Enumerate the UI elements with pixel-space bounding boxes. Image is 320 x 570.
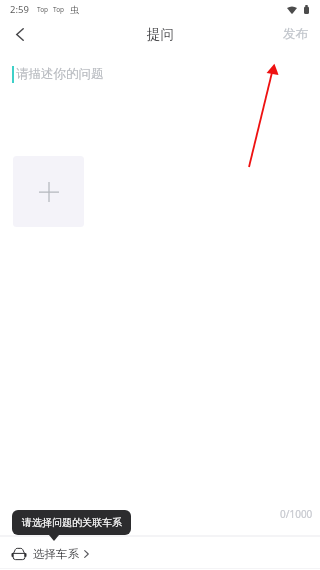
staticText: 请描述你的问题 [16,66,104,82]
staticText: 0/1000 [280,507,313,521]
staticText: 虫 [70,4,79,15]
button[interactable]: Add photo [13,156,84,227]
button[interactable]: 请描述你的问题 [12,64,104,84]
staticText: 2:59 [10,3,29,16]
staticText: Top [37,5,49,14]
staticText: 提问 [147,26,174,43]
staticText: 发布 [283,26,308,42]
button[interactable]: 选择车系 [0,538,320,570]
button[interactable]: 发布 [271,20,320,48]
staticText: Top [53,5,65,14]
staticText: 选择车系 [33,547,79,561]
button[interactable]: Back [3,18,37,50]
staticText: 请选择问题的关联车系 [22,516,122,529]
